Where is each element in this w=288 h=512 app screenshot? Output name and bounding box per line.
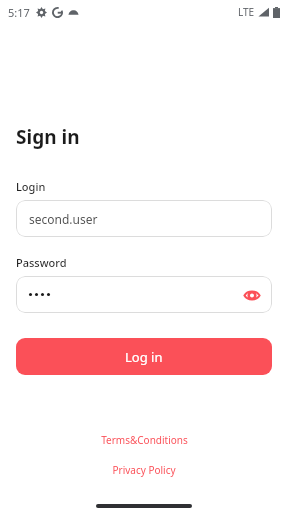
staticText: second.user [29,211,98,227]
staticText: Password [16,255,67,270]
staticText: Sign in [16,124,80,150]
staticText: Login [16,179,46,194]
button[interactable]: Show password [241,284,263,306]
staticText: Log in [125,348,163,366]
button[interactable]: Privacy Policy [0,463,288,477]
staticText: Privacy Policy [112,463,176,477]
staticText: Terms&Conditions [101,433,188,447]
button[interactable]: second.user [16,200,272,237]
button[interactable]: Log in [16,338,272,375]
button[interactable]: Show password [16,276,272,313]
staticText: LTE [238,5,255,19]
button[interactable]: Terms&Conditions [0,433,288,447]
staticText: 5:17 [8,5,30,20]
